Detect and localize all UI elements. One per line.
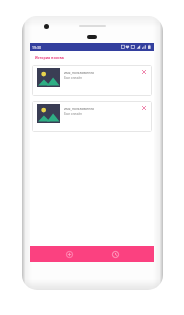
button[interactable]: Добавить (62, 247, 76, 261)
button[interactable]: Удалить (140, 68, 148, 76)
staticText: Был онлайн (64, 76, 82, 80)
button[interactable]: История (108, 247, 122, 261)
staticText: имя_пользователя (64, 70, 95, 74)
staticText: Был онлайн (64, 112, 82, 116)
button[interactable]: имя_пользователя (32, 65, 152, 96)
staticText: 19:30 (32, 45, 41, 50)
button[interactable]: имя_пользователя (32, 101, 152, 132)
button[interactable]: Удалить (140, 104, 148, 112)
staticText: История поиска (35, 55, 64, 60)
staticText: имя_пользователя (64, 106, 95, 110)
